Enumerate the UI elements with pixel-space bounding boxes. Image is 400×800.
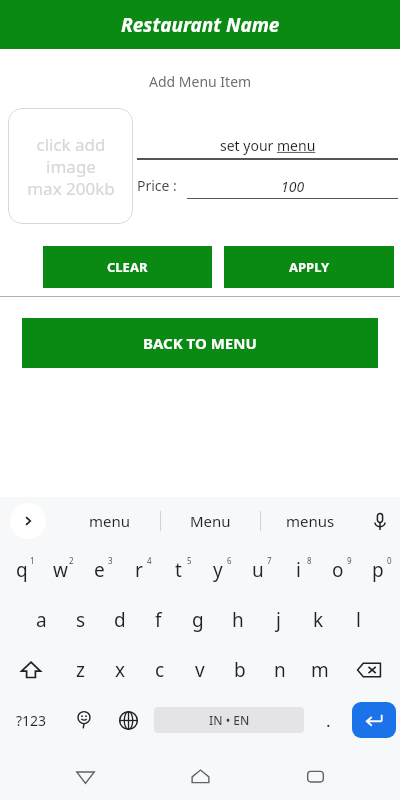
button[interactable]: f xyxy=(139,595,178,645)
staticText: set your xyxy=(220,136,277,155)
button[interactable]: o xyxy=(318,545,358,595)
button[interactable]: k xyxy=(298,595,338,645)
staticText: APPLY xyxy=(289,258,330,276)
staticText: s xyxy=(76,607,86,633)
staticText: r xyxy=(135,557,143,583)
button[interactable]: b xyxy=(220,645,260,695)
staticText: p xyxy=(372,557,384,583)
staticText: v xyxy=(195,657,205,683)
staticText: 8 xyxy=(307,555,312,566)
button[interactable]: CLEAR xyxy=(43,246,212,288)
staticText: a xyxy=(36,607,47,633)
staticText: Add Menu Item xyxy=(149,72,252,91)
staticText: 2 xyxy=(69,555,74,566)
staticText: 4 xyxy=(147,555,152,566)
button[interactable]: Expand suggestions xyxy=(10,503,46,539)
staticText: 9 xyxy=(347,555,352,566)
button[interactable]: Home xyxy=(170,753,230,800)
button[interactable]: j xyxy=(258,595,298,645)
button[interactable]: s xyxy=(61,595,100,645)
button[interactable]: w xyxy=(41,545,80,595)
button[interactable]: Emoji xyxy=(62,695,106,745)
staticText: y xyxy=(213,557,223,583)
staticText: u xyxy=(252,557,264,583)
button[interactable]: i xyxy=(278,545,318,595)
button[interactable]: menu xyxy=(60,497,160,545)
staticText: j xyxy=(276,607,281,633)
staticText: Price : xyxy=(137,176,177,195)
staticText: 3 xyxy=(108,555,113,566)
button[interactable]: u xyxy=(238,545,278,595)
button[interactable]: Backspace xyxy=(340,645,398,695)
button[interactable]: r xyxy=(119,545,158,595)
button[interactable]: Voice input xyxy=(360,497,400,545)
staticText: k xyxy=(313,607,324,633)
button[interactable]: v xyxy=(180,645,220,695)
button[interactable]: d xyxy=(100,595,139,645)
button[interactable]: Recents xyxy=(285,753,345,800)
button[interactable]: IN • EN xyxy=(154,707,304,733)
button[interactable]: z xyxy=(60,645,100,695)
staticText: h xyxy=(232,607,244,633)
button[interactable]: Back xyxy=(55,753,115,800)
staticText: e xyxy=(94,557,105,583)
button[interactable]: h xyxy=(218,595,258,645)
staticText: g xyxy=(192,607,204,633)
staticText: Menu xyxy=(190,511,231,531)
button[interactable]: Change language xyxy=(106,695,150,745)
button[interactable]: ?123 xyxy=(0,695,62,745)
staticText: d xyxy=(114,607,126,633)
button[interactable]: Enter xyxy=(352,702,396,738)
button[interactable]: q xyxy=(2,545,41,595)
button[interactable]: p xyxy=(358,545,398,595)
button[interactable]: Price : xyxy=(137,176,398,199)
button[interactable]: a xyxy=(22,595,61,645)
button[interactable]: BACK TO MENU xyxy=(22,318,378,368)
staticText: 6 xyxy=(227,555,232,566)
staticText: menus xyxy=(286,511,335,531)
button[interactable]: Menu xyxy=(161,497,260,545)
staticText: 100 xyxy=(281,177,305,196)
button[interactable]: g xyxy=(178,595,218,645)
button[interactable]: m xyxy=(300,645,340,695)
staticText: . xyxy=(326,709,331,732)
staticText: 7 xyxy=(267,555,272,566)
staticText: 0 xyxy=(387,555,392,566)
staticText: Restaurant Name xyxy=(121,12,280,38)
button[interactable]: x xyxy=(100,645,140,695)
staticText: 5 xyxy=(187,555,192,566)
staticText: w xyxy=(53,557,68,583)
button[interactable]: l xyxy=(338,595,378,645)
staticText: i xyxy=(296,557,301,583)
staticText: f xyxy=(155,607,162,633)
button[interactable]: y xyxy=(198,545,238,595)
staticText: n xyxy=(274,657,286,683)
staticText: menu xyxy=(277,136,316,155)
button[interactable]: set your xyxy=(137,136,398,160)
staticText: q xyxy=(16,557,28,583)
staticText: IN • EN xyxy=(209,712,250,728)
staticText: o xyxy=(332,557,344,583)
staticText: m xyxy=(311,657,329,683)
staticText: CLEAR xyxy=(107,258,148,276)
staticText: x xyxy=(115,657,126,683)
button[interactable]: . xyxy=(308,695,348,745)
staticText: z xyxy=(76,657,85,683)
staticText: menu xyxy=(89,511,131,531)
button[interactable]: n xyxy=(260,645,300,695)
button[interactable]: click add image max 200kb xyxy=(8,108,133,224)
staticText: b xyxy=(234,657,246,683)
staticText: ?123 xyxy=(16,711,47,730)
staticText: t xyxy=(175,557,182,583)
button[interactable]: c xyxy=(140,645,180,695)
staticText: l xyxy=(356,607,361,633)
staticText: click add image max 200kb xyxy=(27,133,115,200)
button[interactable]: APPLY xyxy=(224,246,394,288)
button[interactable]: menus xyxy=(261,497,360,545)
staticText: 1 xyxy=(30,555,35,566)
button[interactable]: e xyxy=(80,545,119,595)
button[interactable]: Shift xyxy=(2,645,60,695)
staticText: c xyxy=(155,657,165,683)
staticText: BACK TO MENU xyxy=(143,333,257,353)
button[interactable]: t xyxy=(158,545,198,595)
